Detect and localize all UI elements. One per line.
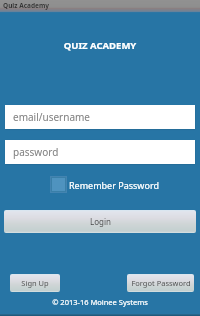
button[interactable]: Forgot Password <box>127 274 194 292</box>
staticText: password <box>13 145 59 159</box>
staticText: Sign Up <box>21 278 49 288</box>
button[interactable]: email/username <box>5 105 195 129</box>
staticText: email/username <box>13 110 90 124</box>
staticText: © 2013-16 Moinee Systems <box>0 297 200 307</box>
staticText: QUIZ ACADEMY <box>0 39 200 52</box>
button[interactable]: Remember Password <box>50 176 159 193</box>
button[interactable]: Sign Up <box>10 274 60 292</box>
staticText: Forgot Password <box>131 278 191 288</box>
staticText: Quiz Academy <box>3 1 49 10</box>
staticText: Remember Password <box>69 179 159 191</box>
button[interactable]: Login <box>4 210 196 233</box>
button[interactable]: password <box>5 140 195 164</box>
staticText: Login <box>90 216 111 227</box>
